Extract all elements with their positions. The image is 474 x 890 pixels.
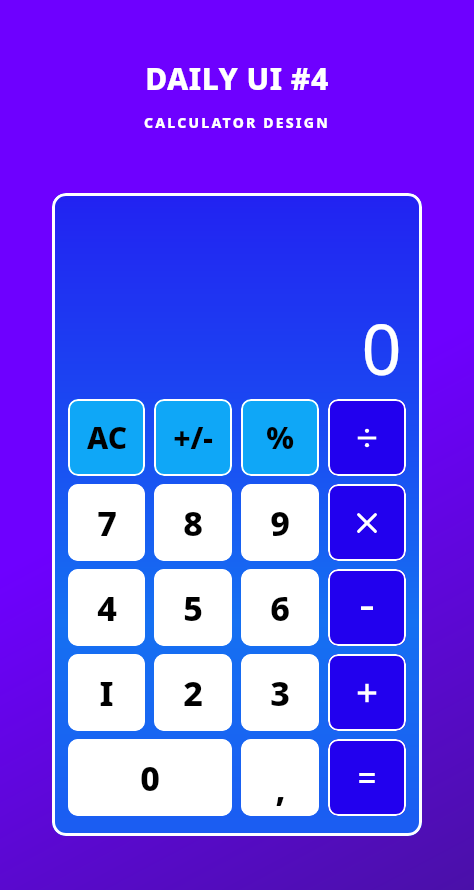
button[interactable]: I <box>68 654 145 731</box>
staticText: 7 <box>97 500 117 546</box>
staticText: , <box>275 765 286 811</box>
button[interactable]: Divide <box>328 399 406 476</box>
button[interactable]: Equals <box>328 739 406 816</box>
staticText: 8 <box>183 500 203 546</box>
button[interactable]: +/- <box>154 399 232 476</box>
staticText: AC <box>87 417 127 458</box>
button[interactable]: % <box>241 399 319 476</box>
staticText: 5 <box>183 585 203 631</box>
staticText: 4 <box>97 585 117 631</box>
staticText: +/- <box>173 417 213 458</box>
staticText: 3 <box>270 670 290 716</box>
button[interactable]: 8 <box>154 484 232 561</box>
button[interactable]: 7 <box>68 484 145 561</box>
staticText: 0 <box>140 755 160 801</box>
staticText: 2 <box>183 670 203 716</box>
staticText: CALCULATOR DESIGN <box>144 113 330 132</box>
button[interactable]: Minus <box>328 569 406 646</box>
staticText: % <box>266 417 294 458</box>
button[interactable]: 0 <box>68 739 232 816</box>
button[interactable]: AC <box>68 399 145 476</box>
button[interactable]: , <box>241 739 319 816</box>
button[interactable]: Plus <box>328 654 406 731</box>
staticText: I <box>99 670 114 716</box>
button[interactable]: Multiply <box>328 484 406 561</box>
button[interactable]: 3 <box>241 654 319 731</box>
button[interactable]: 6 <box>241 569 319 646</box>
button[interactable]: 2 <box>154 654 232 731</box>
staticText: 0 <box>361 300 402 395</box>
button[interactable]: 4 <box>68 569 145 646</box>
staticText: DAILY UI #4 <box>145 58 329 99</box>
button[interactable]: 5 <box>154 569 232 646</box>
button[interactable]: 9 <box>241 484 319 561</box>
staticText: 6 <box>270 585 290 631</box>
staticText: 9 <box>270 500 290 546</box>
